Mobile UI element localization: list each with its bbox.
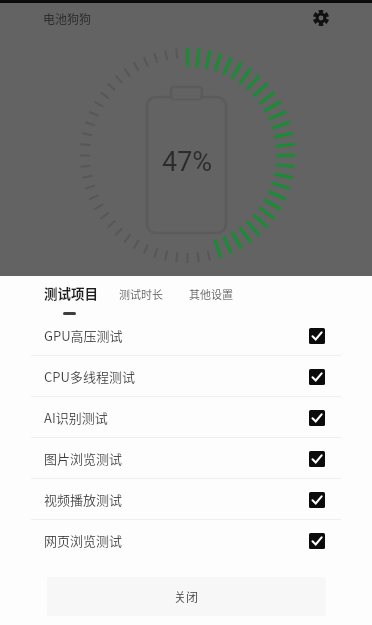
button[interactable]: CPU多线程测试: [0, 356, 372, 397]
staticText: 关闭: [174, 588, 199, 605]
button[interactable]: 其他设置: [185, 282, 237, 306]
staticText: 电池狗狗: [43, 10, 92, 27]
staticText: GPU高压测试: [44, 326, 123, 345]
staticText: 测试项目: [44, 283, 98, 303]
staticText: 47%: [162, 146, 213, 178]
staticText: 网页浏览测试: [44, 531, 123, 550]
staticText: 视频播放测试: [44, 490, 123, 509]
staticText: AI识别测试: [44, 408, 108, 427]
button[interactable]: 视频播放测试: [0, 479, 372, 520]
button[interactable]: 电池狗狗: [40, 6, 95, 31]
button[interactable]: 测试时长: [115, 282, 167, 306]
button[interactable]: 图片浏览测试: [0, 438, 372, 479]
staticText: 其他设置: [189, 286, 233, 302]
button[interactable]: 关闭: [47, 577, 326, 616]
button[interactable]: 网页浏览测试: [0, 520, 372, 561]
button[interactable]: 测试项目: [40, 279, 102, 307]
button[interactable]: Settings: [306, 3, 336, 33]
button[interactable]: GPU高压测试: [0, 315, 372, 356]
staticText: 测试时长: [119, 286, 163, 302]
staticText: 图片浏览测试: [44, 449, 123, 468]
button[interactable]: AI识别测试: [0, 397, 372, 438]
staticText: CPU多线程测试: [44, 367, 135, 386]
